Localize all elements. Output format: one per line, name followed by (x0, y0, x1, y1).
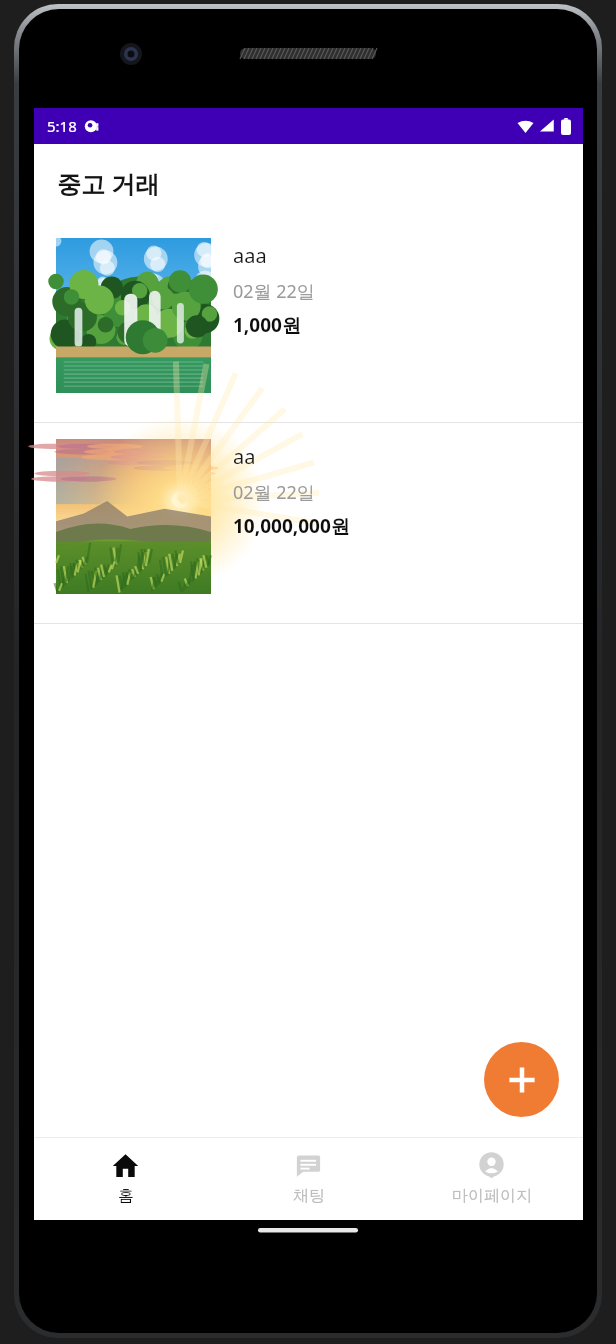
staticText: 5:18 (47, 116, 77, 136)
button[interactable]: aa (34, 423, 583, 623)
button[interactable]: Add item (484, 1042, 559, 1117)
button[interactable]: 채팅 (217, 1138, 400, 1220)
staticText: 10,000,000원 (233, 513, 350, 539)
button[interactable]: aaa (34, 222, 583, 422)
staticText: aa (233, 443, 256, 470)
button[interactable]: 마이페이지 (400, 1138, 583, 1220)
staticText: 중고 거래 (57, 167, 160, 200)
staticText: 홈 (118, 1186, 134, 1206)
staticText: 채팅 (293, 1186, 325, 1206)
staticText: 02월 22일 (233, 279, 315, 304)
staticText: 마이페이지 (452, 1186, 532, 1206)
staticText: 02월 22일 (233, 480, 315, 505)
staticText: 1,000원 (233, 312, 301, 338)
staticText: aaa (233, 242, 267, 269)
button[interactable]: 홈 (34, 1138, 217, 1220)
